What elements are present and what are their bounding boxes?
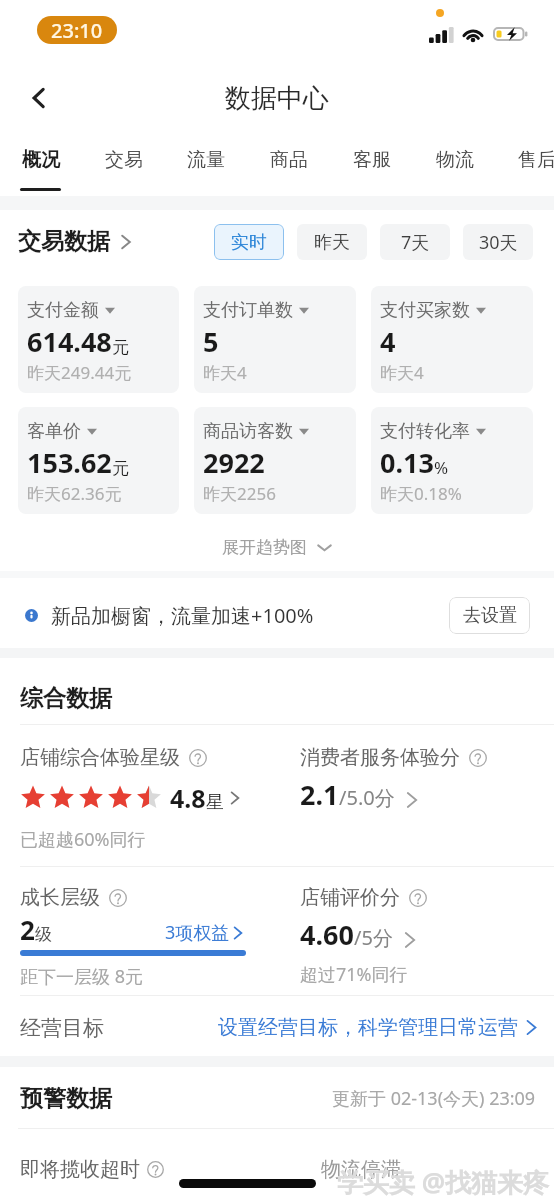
staticText: 即将揽收超时 (20, 1157, 140, 1182)
staticText: 30天 (479, 230, 518, 255)
staticText: 4.8 (170, 781, 206, 815)
staticText: 昨天 (314, 231, 350, 254)
button[interactable]: 4.8 (20, 781, 243, 815)
staticText: 流量 (187, 148, 225, 172)
staticText: 元 (112, 337, 129, 358)
button[interactable]: 交易数据 (18, 227, 135, 256)
staticText: 153.62 (27, 444, 112, 481)
staticText: 2.1 (300, 776, 339, 813)
staticText: 2922 (203, 444, 265, 481)
staticText: 23:10 (51, 17, 103, 44)
button[interactable]: 交易 (82, 134, 165, 196)
staticText: 支付金额 (27, 299, 99, 322)
staticText: 星 (206, 791, 224, 814)
button[interactable]: 昨天 (297, 224, 367, 260)
staticText: 数据中心 (225, 82, 329, 115)
staticText: 交易 (105, 148, 143, 172)
staticText: /5.0分 (339, 784, 395, 811)
button[interactable]: 展开趋势图 (0, 514, 554, 571)
button[interactable]: 2.1 (300, 776, 422, 813)
staticText: 7天 (401, 230, 430, 255)
staticText: 物流停滞 (321, 1157, 401, 1182)
staticText: 昨天4 (203, 361, 247, 384)
staticText: 实时 (231, 231, 267, 254)
button[interactable]: 经营目标 (0, 999, 554, 1056)
staticText: 昨天249.44元 (27, 361, 132, 384)
staticText: 客服 (353, 148, 391, 172)
staticText: 昨天4 (380, 361, 424, 384)
staticText: 更新于 02-13(今天) 23:09 (332, 1086, 536, 1111)
staticText: 3项权益 (165, 920, 230, 945)
button[interactable]: 支付金额 (18, 286, 179, 393)
staticText: 4.60 (300, 916, 354, 953)
staticText: 预警数据 (20, 1084, 112, 1113)
button[interactable]: 客服 (330, 134, 413, 196)
button[interactable]: 商品访客数 (194, 407, 356, 514)
staticText: 售后 (518, 148, 554, 172)
staticText: 支付转化率 (380, 420, 470, 443)
staticText: 综合数据 (20, 684, 112, 713)
staticText: 学买卖 @找猫来疼 (337, 1164, 550, 1200)
staticText: 消费者服务体验分 (300, 745, 460, 770)
button[interactable]: 售后 (495, 134, 554, 196)
staticText: 展开趋势图 (222, 537, 307, 558)
button[interactable]: 物流 (413, 134, 496, 196)
staticText: 支付买家数 (380, 299, 470, 322)
staticText: /5分 (354, 924, 393, 951)
staticText: 超过71%同行 (300, 962, 408, 987)
staticText: 经营目标 (20, 1015, 104, 1041)
button[interactable]: 7天 (380, 224, 450, 260)
staticText: 5 (203, 323, 219, 360)
button[interactable]: 流量 (164, 134, 247, 196)
staticText: 4 (380, 323, 396, 360)
staticText: 概况 (22, 148, 60, 172)
staticText: 设置经营目标，科学管理日常运营 (218, 1015, 518, 1040)
button[interactable]: 30天 (463, 224, 533, 260)
staticText: 商品 (270, 148, 308, 172)
staticText: 元 (112, 458, 129, 479)
staticText: 商品访客数 (203, 420, 293, 443)
button[interactable]: 商品 (247, 134, 330, 196)
staticText: 去设置 (463, 604, 517, 627)
staticText: 昨天2256 (203, 482, 276, 505)
staticText: % (434, 456, 449, 479)
staticText: 昨天0.18% (380, 482, 462, 505)
staticText: 成长层级 (20, 885, 100, 910)
staticText: 已超越60%同行 (20, 827, 146, 852)
button[interactable]: 支付订单数 (194, 286, 356, 393)
staticText: 店铺综合体验星级 (20, 745, 180, 770)
staticText: 0.13 (380, 444, 434, 481)
button[interactable]: 支付买家数 (371, 286, 533, 393)
staticText: 614.48 (27, 323, 112, 360)
button[interactable]: 3项权益 (165, 920, 246, 945)
button[interactable]: 支付转化率 (371, 407, 533, 514)
staticText: 级 (35, 924, 52, 945)
button[interactable]: 4.60 (300, 916, 420, 953)
button[interactable]: 去设置 (449, 597, 530, 634)
button[interactable]: 概况 (0, 134, 82, 196)
staticText: 交易数据 (18, 227, 110, 256)
button[interactable]: 实时 (214, 224, 284, 260)
button[interactable]: 客单价 (18, 407, 179, 514)
staticText: 客单价 (27, 420, 81, 443)
staticText: 店铺评价分 (300, 885, 400, 910)
button[interactable]: Back (16, 75, 62, 121)
staticText: 昨天62.36元 (27, 482, 122, 505)
staticText: 支付订单数 (203, 299, 293, 322)
staticText: 距下一层级 8元 (20, 964, 143, 989)
staticText: 新品加橱窗，流量加速+100% (51, 602, 314, 629)
staticText: 2 (20, 912, 35, 947)
staticText: 物流 (436, 148, 474, 172)
